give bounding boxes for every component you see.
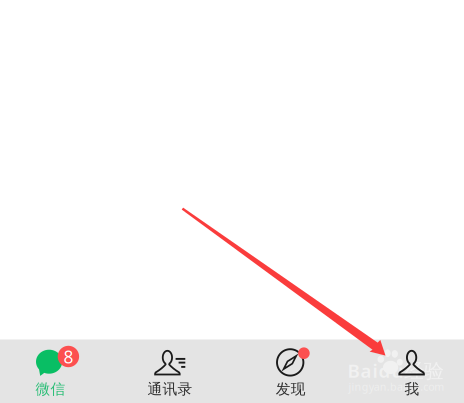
- staticText: 通讯录: [147, 380, 192, 398]
- staticText: 微信: [35, 380, 65, 398]
- button[interactable]: 通讯录: [110, 339, 230, 403]
- staticText: 我: [404, 380, 419, 398]
- staticText: jingyan.baidu.com: [348, 379, 444, 394]
- button[interactable]: 8: [0, 339, 110, 403]
- staticText: 发现: [276, 380, 306, 398]
- staticText: 8: [63, 345, 73, 368]
- staticText: 经验: [404, 359, 444, 383]
- button[interactable]: 我: [352, 339, 464, 403]
- button[interactable]: 发现: [230, 339, 350, 403]
- staticText: Baidu: [347, 358, 403, 383]
